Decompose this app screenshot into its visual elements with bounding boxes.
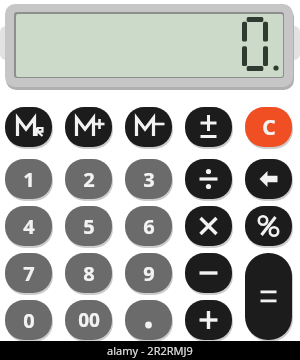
other: Multiply xyxy=(185,206,232,246)
button[interactable]: 6 xyxy=(125,206,172,246)
other: Memory recall xyxy=(5,107,52,147)
button[interactable]: Memory plus xyxy=(65,107,112,147)
staticText: 9 xyxy=(143,260,155,287)
staticText: 1 xyxy=(23,166,35,193)
other: Memory plus xyxy=(65,107,112,147)
staticText: 5 xyxy=(83,213,95,240)
staticText: 8 xyxy=(83,260,95,287)
button[interactable]: Plus xyxy=(185,300,232,340)
button[interactable]: 00 xyxy=(65,300,112,340)
staticText: 3 xyxy=(143,166,155,193)
button[interactable]: 1 xyxy=(5,159,52,199)
other: Backspace xyxy=(245,159,292,199)
button[interactable]: Multiply xyxy=(185,206,232,246)
staticText: 00 xyxy=(78,307,100,333)
other: Plus xyxy=(185,300,232,340)
other: Equals xyxy=(245,253,292,340)
staticText: alamy - 2R2RMJ9 xyxy=(107,343,193,358)
button[interactable]: 3 xyxy=(125,159,172,199)
staticText: 0 xyxy=(23,307,35,334)
other: Minus xyxy=(185,253,232,293)
other: Divide xyxy=(185,159,232,199)
other: Plus minus sign change xyxy=(185,107,232,147)
staticText: 4 xyxy=(23,213,35,240)
other: Decimal point xyxy=(125,300,172,340)
button[interactable]: 4 xyxy=(5,206,52,246)
staticText: C xyxy=(262,113,276,142)
button[interactable]: C xyxy=(245,107,292,147)
button[interactable]: Divide xyxy=(185,159,232,199)
button[interactable]: Backspace xyxy=(245,159,292,199)
button[interactable]: 2 xyxy=(65,159,112,199)
button[interactable]: Plus minus sign change xyxy=(185,107,232,147)
button[interactable]: 5 xyxy=(65,206,112,246)
button[interactable]: 8 xyxy=(65,253,112,293)
button[interactable]: Decimal point xyxy=(125,300,172,340)
button[interactable]: 9 xyxy=(125,253,172,293)
staticText: 2 xyxy=(83,166,95,193)
button[interactable]: 7 xyxy=(5,253,52,293)
other: Percent xyxy=(245,206,292,246)
button[interactable]: Percent xyxy=(245,206,292,246)
button[interactable]: Equals xyxy=(245,253,292,340)
button[interactable]: Memory recall xyxy=(5,107,52,147)
button[interactable]: 0 xyxy=(5,300,52,340)
other: Memory minus xyxy=(125,107,172,147)
button[interactable]: Minus xyxy=(185,253,232,293)
staticText: 6 xyxy=(143,213,155,240)
button[interactable]: Memory minus xyxy=(125,107,172,147)
staticText: 7 xyxy=(23,260,35,287)
